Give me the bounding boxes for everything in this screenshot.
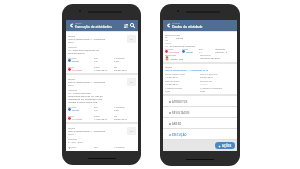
staticText: 0,00 (114, 108, 119, 111)
staticText: 17/03/2019 (165, 82, 178, 85)
staticText: Iniciar (72, 59, 80, 62)
staticText: ADMINISTRADOR (200, 56, 221, 59)
staticText: STATUS (182, 48, 188, 50)
staticText: Execução de atividades (75, 24, 112, 29)
staticText: TÍTULO (165, 42, 171, 44)
button[interactable]: ATRIBUTOS (163, 96, 237, 107)
staticText: 10 - Protocolo de Contrato (165, 44, 196, 47)
staticText: SITUAÇÃO (68, 57, 77, 59)
staticText: ORC/4420000400011 Marketing (68, 129, 106, 132)
staticText: ATIVIDADE (68, 138, 77, 140)
staticText: SITUAÇÃO (68, 106, 77, 108)
staticText: ANEXO (172, 122, 182, 125)
staticText: % ATIVIDADE (114, 146, 125, 148)
staticText: Atrasado (72, 117, 83, 120)
staticText: 0,00 (165, 89, 170, 92)
button[interactable]: AÇÕES (215, 142, 235, 149)
staticText: 28/03/2019 (200, 75, 213, 78)
staticText: PROJETO (68, 127, 76, 129)
staticText: IDENTIFICADOR (165, 34, 176, 38)
staticText: ATIVIDADE (68, 89, 77, 91)
staticText: 17/03/2019 (94, 68, 107, 71)
staticText: DATA PLANEJADA INÍCIO (165, 73, 185, 75)
staticText: STATUS (68, 66, 74, 68)
staticText: 2,0 (94, 59, 98, 62)
staticText: ATIVIDADE (172, 22, 181, 24)
staticText: SITUAÇÃO (68, 146, 77, 148)
staticText: 5 - SAP - Plus (68, 140, 83, 143)
staticText: 2,0 (94, 108, 98, 111)
staticText: 0,00 (114, 59, 119, 62)
staticText: % Atingido HH Trabalhadas (200, 87, 222, 89)
staticText: TIPO (176, 34, 180, 36)
staticText: AÇÕES (222, 144, 232, 148)
button[interactable]: More options (127, 35, 136, 43)
staticText: 17/03/2019 (94, 117, 107, 120)
staticText: PRIORIDADE (215, 48, 226, 50)
staticText: ORC/4420000400011 Marketing (68, 80, 106, 83)
staticText: PROJETO (165, 66, 173, 68)
staticText: INÍCIO (94, 115, 100, 117)
staticText: ORC/4420000400011 Marketing 2019 (165, 68, 209, 71)
staticText: EXECUÇÃO (172, 133, 187, 136)
staticText: Dados da atividade (172, 24, 203, 29)
button[interactable]: RESULTADOS (163, 107, 237, 118)
staticText: 0,00 (200, 89, 205, 92)
staticText: 15 - Avaliar inclusão (68, 91, 91, 94)
staticText: necessária/serviços ou .pdf da (68, 94, 103, 97)
staticText: 2019 (68, 40, 74, 43)
button[interactable]: Search (129, 22, 136, 29)
staticText: integração 3D Document com (68, 97, 103, 100)
staticText: DIAS (94, 57, 98, 59)
staticText: ORC/4420000400011 Marketing (68, 37, 106, 40)
staticText: % ATIVIDADE (114, 106, 125, 108)
staticText: STATUS (68, 115, 74, 117)
staticText: PROJETO (68, 35, 76, 37)
staticText: Tarefa (176, 36, 184, 39)
button[interactable]: Back (165, 22, 172, 29)
button[interactable]: Back (68, 22, 75, 29)
staticText: FIM (114, 115, 118, 117)
staticText: 10 (165, 38, 168, 41)
staticText: 28/03/2019 (114, 117, 127, 120)
staticText: % ATIVIDADE (114, 57, 125, 59)
staticText: 28/03/2019 (114, 68, 127, 71)
staticText: FIM (114, 66, 118, 68)
staticText: INÍCIO (94, 66, 100, 68)
staticText: 17/03/2019 (165, 75, 178, 78)
button[interactable]: More options (127, 78, 136, 86)
staticText: 2019 (68, 132, 74, 135)
staticText: SITUAÇÃO (165, 48, 174, 50)
staticText: DIAS (94, 106, 98, 108)
staticText: % Atingido Concluído (165, 87, 183, 89)
staticText: Requerimento (68, 51, 85, 54)
staticText: Google Drive e Office 365 (68, 100, 98, 103)
staticText: DATA REAL FIM (200, 80, 213, 82)
staticText: ADMIN SRS (170, 57, 184, 60)
staticText: RESPONSÁVEL (165, 54, 177, 56)
staticText: RESULTADOS (172, 111, 190, 114)
button[interactable]: ANEXO (163, 118, 237, 129)
staticText: DATA PLANEJADA FIM (200, 73, 218, 75)
staticText: Iniciar (72, 108, 80, 111)
staticText: PROJETO (68, 78, 76, 80)
staticText: DATA REAL INÍCIO (165, 80, 180, 82)
staticText: Normal - 3 (215, 50, 228, 53)
staticText: DIAS (199, 48, 203, 50)
staticText: SOLICITANTE (200, 54, 211, 56)
staticText: 2019 (68, 83, 74, 86)
staticText: Atrasado (169, 50, 180, 53)
staticText: PROJETO (75, 22, 82, 24)
button[interactable]: More options (127, 127, 136, 135)
staticText: --/--/---- (200, 82, 209, 85)
button[interactable]: Sort (122, 22, 129, 29)
staticText: 11 (199, 50, 202, 53)
staticText: Iniciar (186, 50, 194, 53)
staticText: ATRIBUTOS (172, 100, 188, 103)
button[interactable]: EXECUÇÃO (163, 129, 237, 140)
staticText: ATIVIDADE (68, 46, 77, 48)
staticText: DIAS (94, 146, 98, 148)
